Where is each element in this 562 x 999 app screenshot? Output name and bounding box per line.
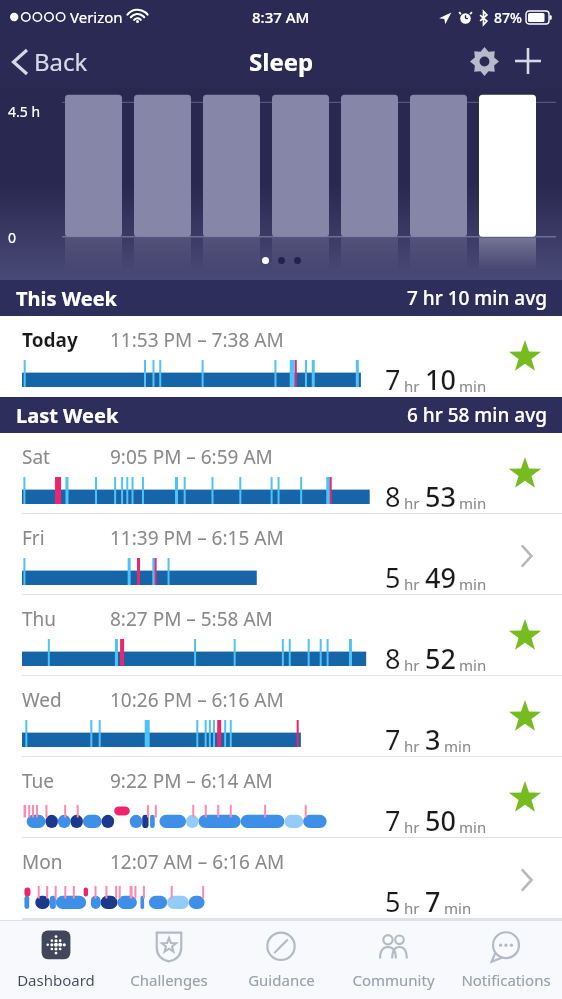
staticText: 87% xyxy=(494,8,522,27)
staticText: Dashboard xyxy=(17,970,95,990)
staticText: min xyxy=(459,376,487,396)
button[interactable]: Dashboard xyxy=(0,920,112,999)
staticText: 11:39 PM – 6:15 AM xyxy=(110,525,284,551)
staticText: min xyxy=(459,493,487,513)
staticText: 9:05 PM – 6:59 AM xyxy=(110,444,273,470)
staticText: Wed xyxy=(22,687,62,713)
staticText: hr xyxy=(404,736,420,756)
staticText: 11:53 PM – 7:38 AM xyxy=(110,327,284,353)
staticText: 7 xyxy=(425,883,441,920)
staticText: Verizon xyxy=(70,7,123,27)
staticText: 6 hr 58 min avg xyxy=(407,402,548,428)
staticText: Sat xyxy=(22,444,50,470)
button[interactable]: Today xyxy=(0,316,562,397)
staticText: Mon xyxy=(22,849,63,875)
staticText: hr xyxy=(404,376,420,396)
staticText: 5 xyxy=(385,559,401,596)
staticText: 7 hr 10 min avg xyxy=(407,285,548,311)
staticText: Fri xyxy=(22,525,45,551)
staticText: min xyxy=(444,736,472,756)
staticText: Back xyxy=(34,45,88,78)
button[interactable]: Thu xyxy=(0,595,562,676)
button[interactable]: Tue xyxy=(0,757,562,838)
staticText: hr xyxy=(404,493,420,513)
button[interactable]: Wed xyxy=(0,676,562,757)
staticText: 49 xyxy=(425,559,456,596)
button[interactable]: Guidance xyxy=(225,920,337,999)
staticText: 5 xyxy=(385,883,401,920)
staticText: Today xyxy=(22,327,78,353)
staticText: hr xyxy=(404,898,420,918)
button[interactable]: Add xyxy=(506,39,550,83)
staticText: min xyxy=(459,574,487,594)
staticText: 7 xyxy=(385,721,401,758)
staticText: 3 xyxy=(425,721,441,758)
staticText: 9:22 PM – 6:14 AM xyxy=(110,768,273,794)
staticText: This Week xyxy=(16,285,117,312)
staticText: min xyxy=(459,817,487,837)
staticText: Tue xyxy=(22,768,55,794)
button[interactable]: Notifications xyxy=(450,920,562,999)
staticText: Sleep xyxy=(249,45,314,78)
staticText: Community xyxy=(352,970,435,990)
staticText: Guidance xyxy=(248,970,315,990)
staticText: hr xyxy=(404,655,420,675)
staticText: Last Week xyxy=(16,402,119,429)
button[interactable]: Mon xyxy=(0,838,562,919)
staticText: 8:37 AM xyxy=(252,7,310,27)
button[interactable]: Settings xyxy=(462,39,506,83)
button[interactable]: Back xyxy=(0,39,98,84)
staticText: 10:26 PM – 6:16 AM xyxy=(110,687,284,713)
staticText: 8 xyxy=(385,640,401,677)
staticText: 0 xyxy=(8,228,17,247)
staticText: 52 xyxy=(425,640,456,677)
staticText: Notifications xyxy=(461,970,551,990)
staticText: 7 xyxy=(385,802,401,839)
button[interactable]: Fri xyxy=(0,514,562,595)
button[interactable]: Sat xyxy=(0,433,562,514)
staticText: 4.5 h xyxy=(8,102,41,121)
staticText: 50 xyxy=(425,802,456,839)
staticText: min xyxy=(459,655,487,675)
staticText: 10 xyxy=(425,361,456,398)
staticText: 7 xyxy=(385,361,401,398)
staticText: Challenges xyxy=(130,970,208,990)
staticText: 8:27 PM – 5:58 AM xyxy=(110,606,273,632)
button[interactable]: Challenges xyxy=(113,920,225,999)
button[interactable]: Community xyxy=(337,920,449,999)
staticText: min xyxy=(444,898,472,918)
staticText: hr xyxy=(404,574,420,594)
staticText: 8 xyxy=(385,478,401,515)
staticText: hr xyxy=(404,817,420,837)
staticText: 53 xyxy=(425,478,456,515)
staticText: Thu xyxy=(22,606,57,632)
staticText: 12:07 AM – 6:16 AM xyxy=(110,849,285,875)
